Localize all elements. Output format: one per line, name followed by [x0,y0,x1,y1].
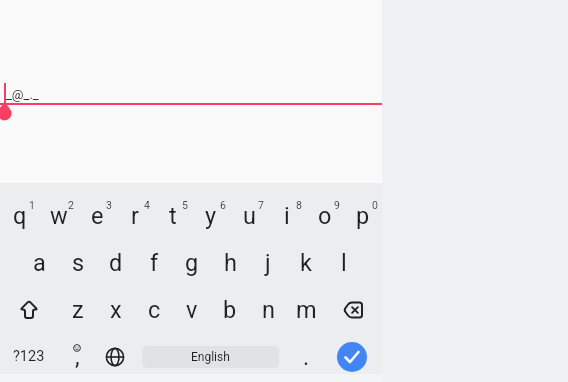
button[interactable]: q [0,192,39,239]
button[interactable]: s [59,239,97,286]
button[interactable]: h [211,239,249,286]
button[interactable]: o [306,192,344,239]
button[interactable] [96,333,134,380]
button[interactable]: w [39,192,78,239]
button[interactable]: d [97,239,135,286]
staticText: 1 [29,199,35,211]
button[interactable]: , [58,333,96,380]
staticText: c [148,296,161,324]
staticText: . [303,343,310,371]
staticText: _@_._ [6,87,39,102]
button[interactable] [325,333,382,380]
staticText: o [318,202,332,230]
staticText: g [185,249,199,277]
staticText: z [72,296,84,324]
staticText: 2 [68,199,74,211]
staticText: b [223,296,237,324]
button[interactable] [325,286,382,333]
staticText: k [300,249,312,277]
staticText: f [150,249,159,277]
button[interactable]: a [20,239,59,286]
staticText: n [262,296,275,324]
staticText: 8 [296,199,302,211]
staticText: a [33,249,46,277]
button[interactable]: v [173,286,211,333]
staticText: d [109,249,123,277]
button[interactable]: e [78,192,116,239]
staticText: q [13,202,27,230]
staticText: l [341,249,347,277]
staticText: s [72,249,85,277]
button[interactable]: i [268,192,306,239]
staticText: , [75,343,80,371]
staticText: p [356,202,370,230]
staticText: r [131,202,139,230]
staticText: 5 [182,199,188,211]
button[interactable]: t [154,192,192,239]
staticText: 0 [372,199,378,211]
staticText: x [110,296,122,324]
button[interactable]: z [58,286,97,333]
button[interactable]: English [134,333,287,380]
staticText: m [296,296,317,324]
staticText: English [191,350,230,364]
button[interactable]: l [325,239,363,286]
button[interactable]: x [97,286,135,333]
button[interactable]: r [116,192,154,239]
button[interactable]: c [135,286,173,333]
button[interactable]: g [173,239,211,286]
button[interactable]: _@_._ [0,0,382,120]
button[interactable]: . [287,333,325,380]
button[interactable]: p [344,192,382,239]
staticText: 7 [258,199,264,211]
button[interactable]: b [211,286,249,333]
staticText: j [265,249,271,277]
staticText: w [50,202,68,230]
button[interactable]: n [249,286,287,333]
button[interactable]: u [230,192,268,239]
button[interactable]: f [135,239,173,286]
staticText: h [224,249,237,277]
staticText: u [243,202,256,230]
button[interactable]: j [249,239,287,286]
button[interactable]: k [287,239,325,286]
button[interactable]: ?123 [0,333,58,380]
button[interactable]: y [192,192,230,239]
button[interactable]: m [287,286,325,333]
staticText: 9 [334,199,340,211]
staticText: e [91,202,104,230]
staticText: 6 [220,199,226,211]
staticText: 4 [144,199,150,211]
staticText: ?123 [13,348,45,365]
staticText: t [169,202,177,230]
staticText: y [205,202,217,230]
staticText: 3 [106,199,112,211]
staticText: i [284,202,290,230]
button[interactable] [0,286,58,333]
staticText: v [186,296,198,324]
